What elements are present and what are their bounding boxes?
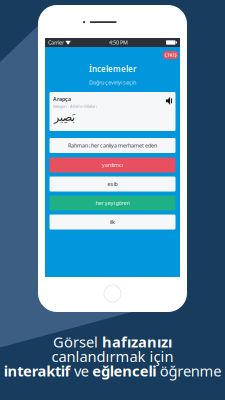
button[interactable]: her şeyi gören [49, 195, 175, 210]
staticText: yardımcı [102, 161, 123, 169]
staticText: بَصِير [53, 111, 74, 123]
staticText: İncelemeler [89, 64, 136, 74]
staticText: esib [107, 180, 117, 188]
button[interactable]: Rahman ; her canlıya merhamet eden [49, 138, 175, 153]
staticText: 4:50 PM [109, 39, 128, 46]
button[interactable]: esib [49, 176, 175, 191]
staticText: Rahman ; her canlıya merhamet eden [68, 142, 157, 149]
staticText: her şeyi gören [95, 199, 129, 207]
button[interactable]: ÇIKIŞ [163, 51, 178, 59]
button[interactable]: ilk [49, 214, 175, 229]
staticText: Arapça [53, 95, 71, 102]
staticText: Kategori : Allah'ın Sıfatları [53, 104, 97, 109]
staticText: ÇIKIŞ [164, 52, 176, 58]
staticText: interaktif ve eğlenceli öğrenme [4, 361, 221, 380]
staticText: ilk [110, 218, 115, 226]
staticText: Görsel hafızanızı [53, 332, 172, 351]
staticText: canlandırmak için [51, 346, 173, 366]
staticText: Carrier [48, 39, 64, 46]
staticText: Doğru çeviriyi seçin [89, 79, 136, 86]
button[interactable]: yardımcı [49, 157, 175, 172]
